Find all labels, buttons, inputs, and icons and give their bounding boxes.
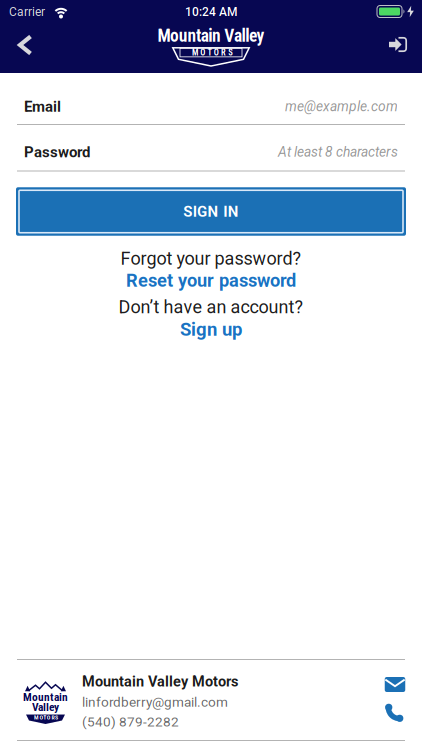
staticText: Mountain Valley Motors <box>82 673 238 690</box>
staticText: 10:24 AM <box>185 5 237 19</box>
staticText: Mountain Valley <box>157 25 264 46</box>
staticText: MOTORS <box>34 714 58 721</box>
staticText: linfordberry@gmail.com <box>82 694 228 710</box>
staticText: SIGN IN <box>183 203 239 220</box>
button[interactable]: SIGN IN <box>16 187 406 236</box>
button[interactable]: Email <box>24 92 398 120</box>
staticText: Reset your password <box>126 270 296 291</box>
button[interactable]: Call <box>377 700 411 724</box>
staticText: Email <box>24 98 61 115</box>
staticText: Carrier <box>9 5 45 19</box>
staticText: Mountain <box>23 690 68 704</box>
staticText: Don’t have an account? <box>118 296 303 318</box>
button[interactable]: Password <box>24 138 398 166</box>
button[interactable]: Sign in <box>376 22 420 66</box>
button[interactable]: Reset your password <box>126 270 296 291</box>
staticText: Sign up <box>180 319 242 340</box>
staticText: MOTORS <box>192 48 233 58</box>
staticText: Password <box>24 143 90 161</box>
button[interactable]: Sign up <box>180 319 242 340</box>
button[interactable]: Back <box>3 23 47 67</box>
staticText: Forgot your password? <box>120 248 301 269</box>
button[interactable]: Send email <box>378 672 412 696</box>
staticText: (540) 879-2282 <box>82 714 179 730</box>
staticText: At least 8 characters <box>278 144 398 160</box>
staticText: Valley <box>32 700 59 714</box>
staticText: me@example.com <box>285 98 398 115</box>
